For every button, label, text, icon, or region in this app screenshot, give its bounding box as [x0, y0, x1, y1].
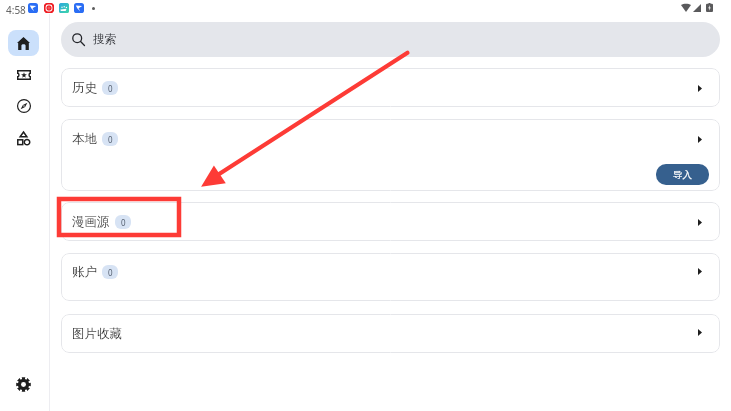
button[interactable]: Settings	[8, 371, 39, 397]
button[interactable]: 导入	[656, 164, 709, 185]
button[interactable]: 账户	[61, 253, 720, 301]
button[interactable]: Tickets	[8, 62, 39, 88]
staticText: 搜索	[93, 32, 117, 47]
button[interactable]: Explore	[8, 93, 39, 119]
button[interactable]: Home	[8, 30, 39, 56]
staticText: 0	[108, 134, 113, 145]
button[interactable]: 搜索	[61, 22, 720, 57]
staticText: 0	[121, 217, 126, 228]
staticText: 导入	[673, 169, 692, 181]
button[interactable]: Categories	[8, 125, 39, 151]
staticText: 历史	[72, 80, 97, 96]
staticText: 0	[108, 267, 113, 278]
staticText: 图片收藏	[72, 326, 122, 342]
staticText: 本地	[72, 131, 97, 147]
button[interactable]: 漫画源	[61, 202, 720, 241]
staticText: 漫画源	[72, 214, 110, 230]
button[interactable]: 历史	[61, 68, 720, 107]
button[interactable]: 本地	[61, 119, 720, 191]
button[interactable]: 图片收藏	[61, 314, 720, 353]
staticText: 0	[108, 83, 113, 94]
staticText: 4:58	[6, 3, 26, 17]
staticText: 账户	[72, 264, 97, 280]
